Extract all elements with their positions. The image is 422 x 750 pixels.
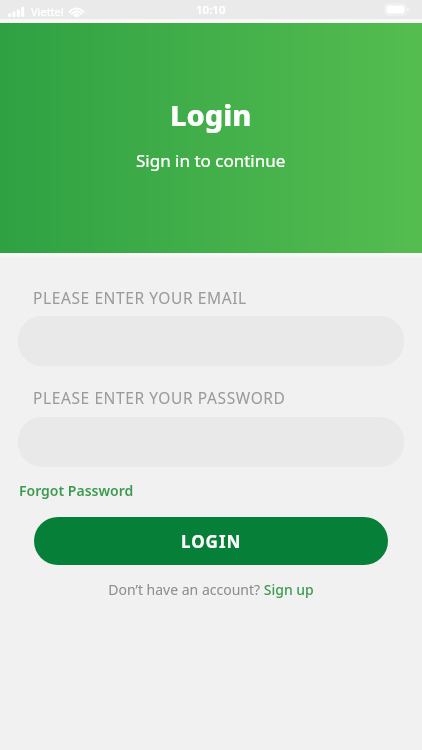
- button[interactable]: LOGIN: [34, 517, 388, 565]
- staticText: Forgot Password: [19, 481, 134, 500]
- staticText: Login: [170, 95, 252, 134]
- staticText: PLEASE ENTER YOUR PASSWORD: [33, 387, 286, 408]
- staticText: PLEASE ENTER YOUR EMAIL: [33, 287, 247, 308]
- button[interactable]: Don’t have an account? Sign up: [18, 580, 404, 599]
- staticText: Don’t have an account? Sign up: [108, 580, 314, 599]
- staticText: LOGIN: [181, 530, 242, 553]
- staticText: 10:10: [196, 2, 226, 18]
- button[interactable]: Forgot Password: [18, 481, 134, 500]
- staticText: Sign in to continue: [136, 149, 286, 172]
- staticText: Viettel: [31, 4, 64, 19]
